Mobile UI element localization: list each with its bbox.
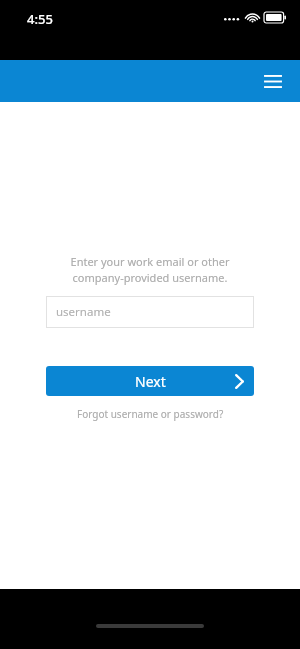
button[interactable]: Forgot username or password? bbox=[77, 407, 224, 421]
staticText: Next bbox=[135, 372, 166, 391]
staticText: username bbox=[56, 304, 111, 320]
staticText: 4:55 bbox=[27, 10, 53, 28]
button[interactable]: Open navigation menu bbox=[253, 61, 293, 101]
staticText: Forgot username or password? bbox=[77, 407, 224, 421]
staticText: Enter your work email or other company-p… bbox=[46, 254, 254, 285]
button[interactable]: Next bbox=[46, 366, 254, 396]
button[interactable]: username bbox=[46, 296, 254, 328]
